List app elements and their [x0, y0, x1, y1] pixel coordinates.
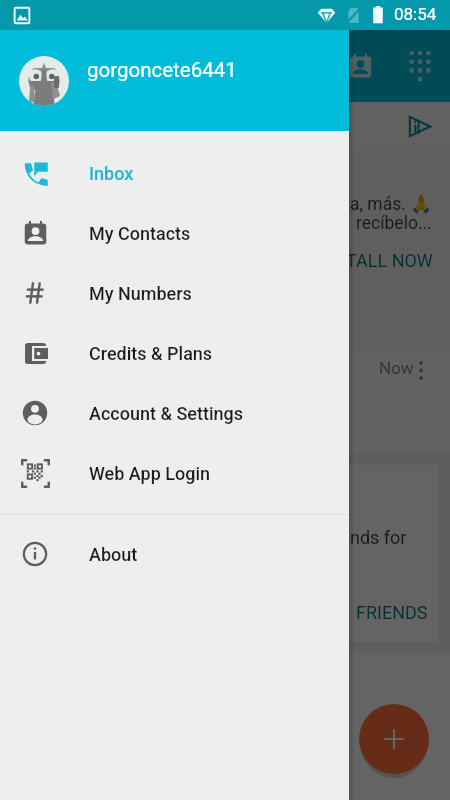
staticText: a, más. 🙏	[350, 194, 432, 215]
button[interactable]: Inbox	[0, 143, 349, 203]
staticText: gorgoncete6441	[87, 58, 237, 82]
staticText: TALL NOW	[346, 250, 433, 271]
button[interactable]: My Contacts	[0, 203, 349, 263]
staticText: FRIENDS	[356, 602, 428, 623]
button[interactable]: Contacts	[336, 42, 384, 90]
staticText: recíbelo...	[356, 213, 432, 234]
staticText: Inbox	[89, 163, 134, 184]
staticText: Now	[379, 358, 414, 378]
staticText: My Contacts	[89, 223, 191, 244]
staticText: My Numbers	[89, 283, 192, 304]
staticText: Account & Settings	[89, 403, 244, 424]
button[interactable]: About	[0, 524, 349, 584]
button[interactable]: New message	[359, 704, 429, 774]
staticText: nds for	[350, 527, 407, 548]
button[interactable]: My Numbers	[0, 263, 349, 323]
staticText: About	[89, 544, 138, 565]
button[interactable]: Account & Settings	[0, 383, 349, 443]
button[interactable]: Web App Login	[0, 443, 349, 503]
staticText: Credits & Plans	[89, 343, 213, 364]
button[interactable]: Credits & Plans	[0, 323, 349, 383]
staticText: Web App Login	[89, 463, 211, 484]
staticText: 08:54	[394, 4, 437, 24]
button[interactable]: Dial pad	[396, 41, 444, 89]
